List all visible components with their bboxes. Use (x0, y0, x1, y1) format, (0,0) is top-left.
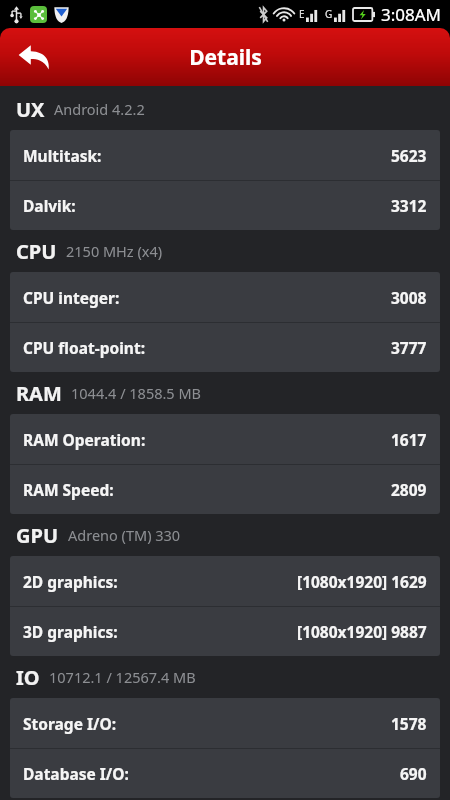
staticText: [1080x1920] 1629 (297, 571, 427, 592)
staticText: 1044.4 / 1858.5 MB (71, 383, 201, 403)
button[interactable]: Multitask: (10, 130, 440, 180)
staticText: 2D graphics: (23, 571, 118, 592)
staticText: CPU float-point: (23, 337, 145, 358)
staticText: 690 (400, 763, 427, 784)
staticText: 3312 (391, 195, 427, 216)
button[interactable]: RAM Speed: (10, 465, 440, 514)
staticText: G (325, 7, 333, 21)
staticText: Dalvik: (23, 195, 76, 216)
button[interactable]: Back (6, 29, 62, 85)
staticText: 10712.1 / 12567.4 MB (49, 667, 196, 687)
staticText: 3:08AM (381, 3, 442, 26)
staticText: [1080x1920] 9887 (297, 621, 427, 642)
staticText: 2809 (391, 479, 427, 500)
staticText: CPU integer: (23, 287, 120, 308)
staticText: RAM Operation: (23, 429, 146, 450)
button[interactable]: 3D graphics: (10, 607, 440, 656)
staticText: RAM (16, 380, 62, 407)
staticText: Multitask: (23, 145, 102, 166)
button[interactable]: Database I/O: (10, 749, 440, 798)
staticText: E (299, 7, 305, 21)
button[interactable]: Dalvik: (10, 181, 440, 230)
staticText: 3D graphics: (23, 621, 118, 642)
button[interactable]: Storage I/O: (10, 698, 440, 748)
staticText: 1617 (391, 429, 427, 450)
staticText: 3777 (391, 337, 427, 358)
staticText: 2150 MHz (x4) (66, 241, 163, 261)
staticText: IO (16, 664, 40, 691)
staticText: RAM Speed: (23, 479, 114, 500)
staticText: CPU (16, 238, 57, 265)
staticText: UX (16, 96, 45, 123)
staticText: 1578 (391, 713, 427, 734)
staticText: Database I/O: (23, 763, 129, 784)
staticText: 5623 (391, 145, 427, 166)
staticText: Adreno (TM) 330 (68, 525, 181, 545)
staticText: 3008 (391, 287, 427, 308)
button[interactable]: CPU float-point: (10, 323, 440, 372)
staticText: Details (189, 43, 262, 72)
button[interactable]: CPU integer: (10, 272, 440, 322)
staticText: Storage I/O: (23, 713, 117, 734)
button[interactable]: 2D graphics: (10, 556, 440, 606)
staticText: GPU (16, 522, 59, 549)
button[interactable]: RAM Operation: (10, 414, 440, 464)
staticText: Android 4.2.2 (54, 99, 145, 119)
